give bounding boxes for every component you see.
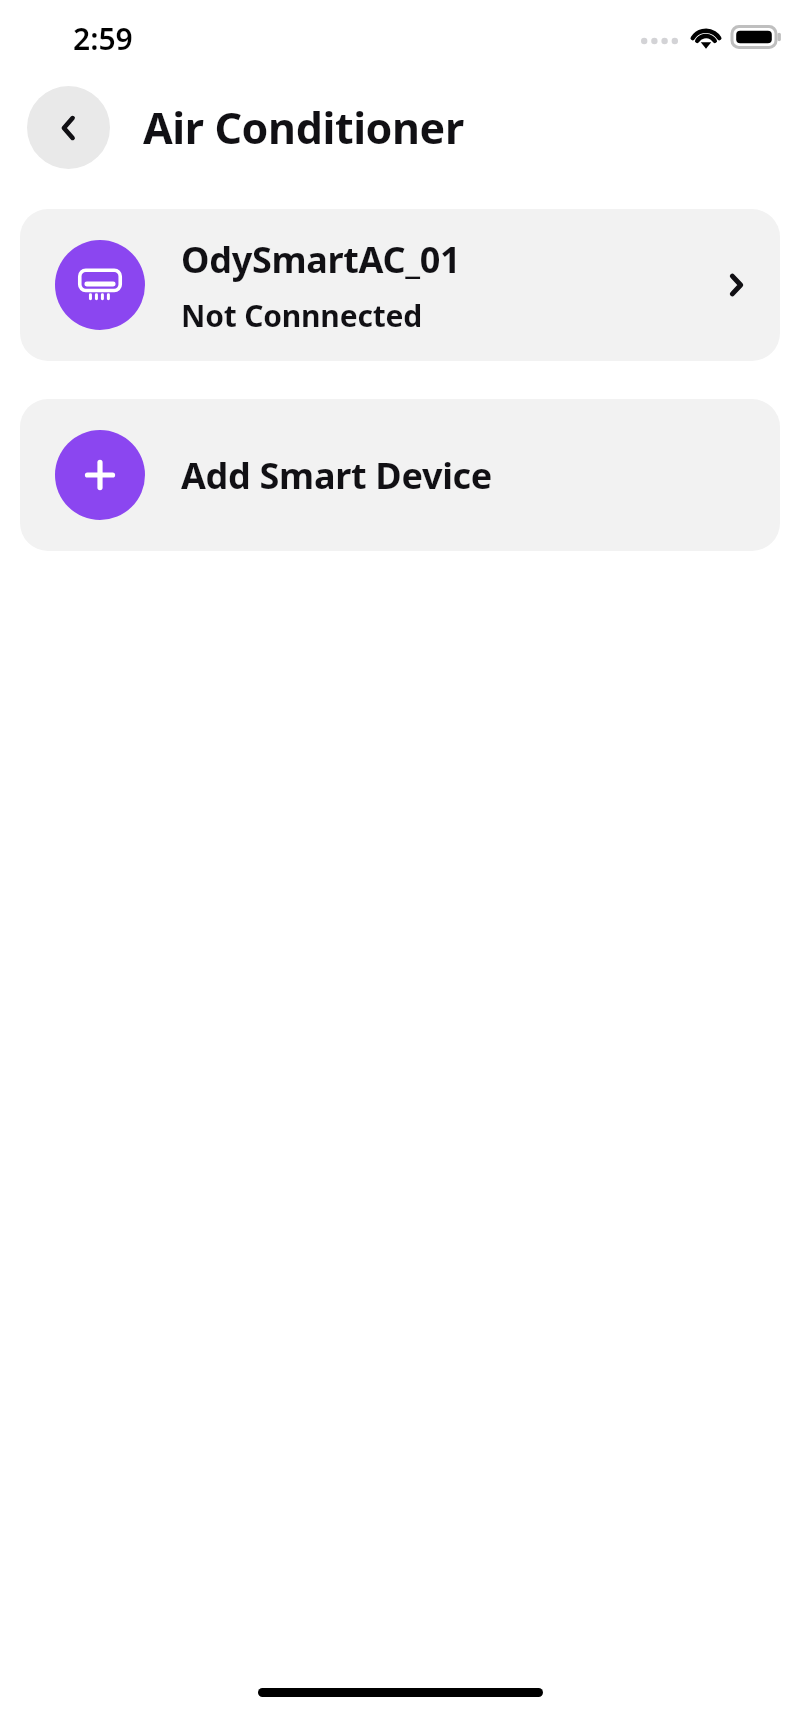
staticText: Air Conditioner: [143, 98, 464, 157]
other: Open device: [710, 259, 762, 311]
staticText: 2:59: [73, 18, 133, 59]
staticText: Not Connnected: [181, 295, 422, 336]
button[interactable]: OdySmartAC_01: [20, 209, 780, 361]
button[interactable]: Add Smart Device: [20, 399, 780, 551]
button[interactable]: Back: [27, 86, 110, 169]
staticText: Add Smart Device: [181, 451, 493, 500]
staticText: OdySmartAC_01: [181, 235, 461, 284]
